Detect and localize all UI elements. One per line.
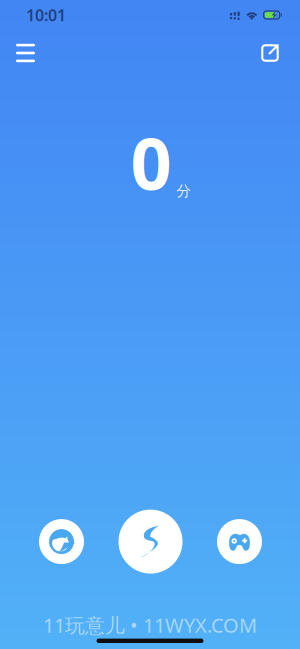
button[interactable]: Menu [0,35,49,71]
staticText: 11玩意儿 • 11WYX.COM [43,612,257,638]
button[interactable]: Browser [39,519,84,564]
staticText: 分 [176,182,191,200]
button[interactable]: Accelerate [118,510,182,574]
button[interactable]: Games [217,519,262,564]
staticText: 10:01 [26,4,66,26]
button[interactable]: Open externally [247,35,300,71]
staticText: 0 [130,114,171,210]
